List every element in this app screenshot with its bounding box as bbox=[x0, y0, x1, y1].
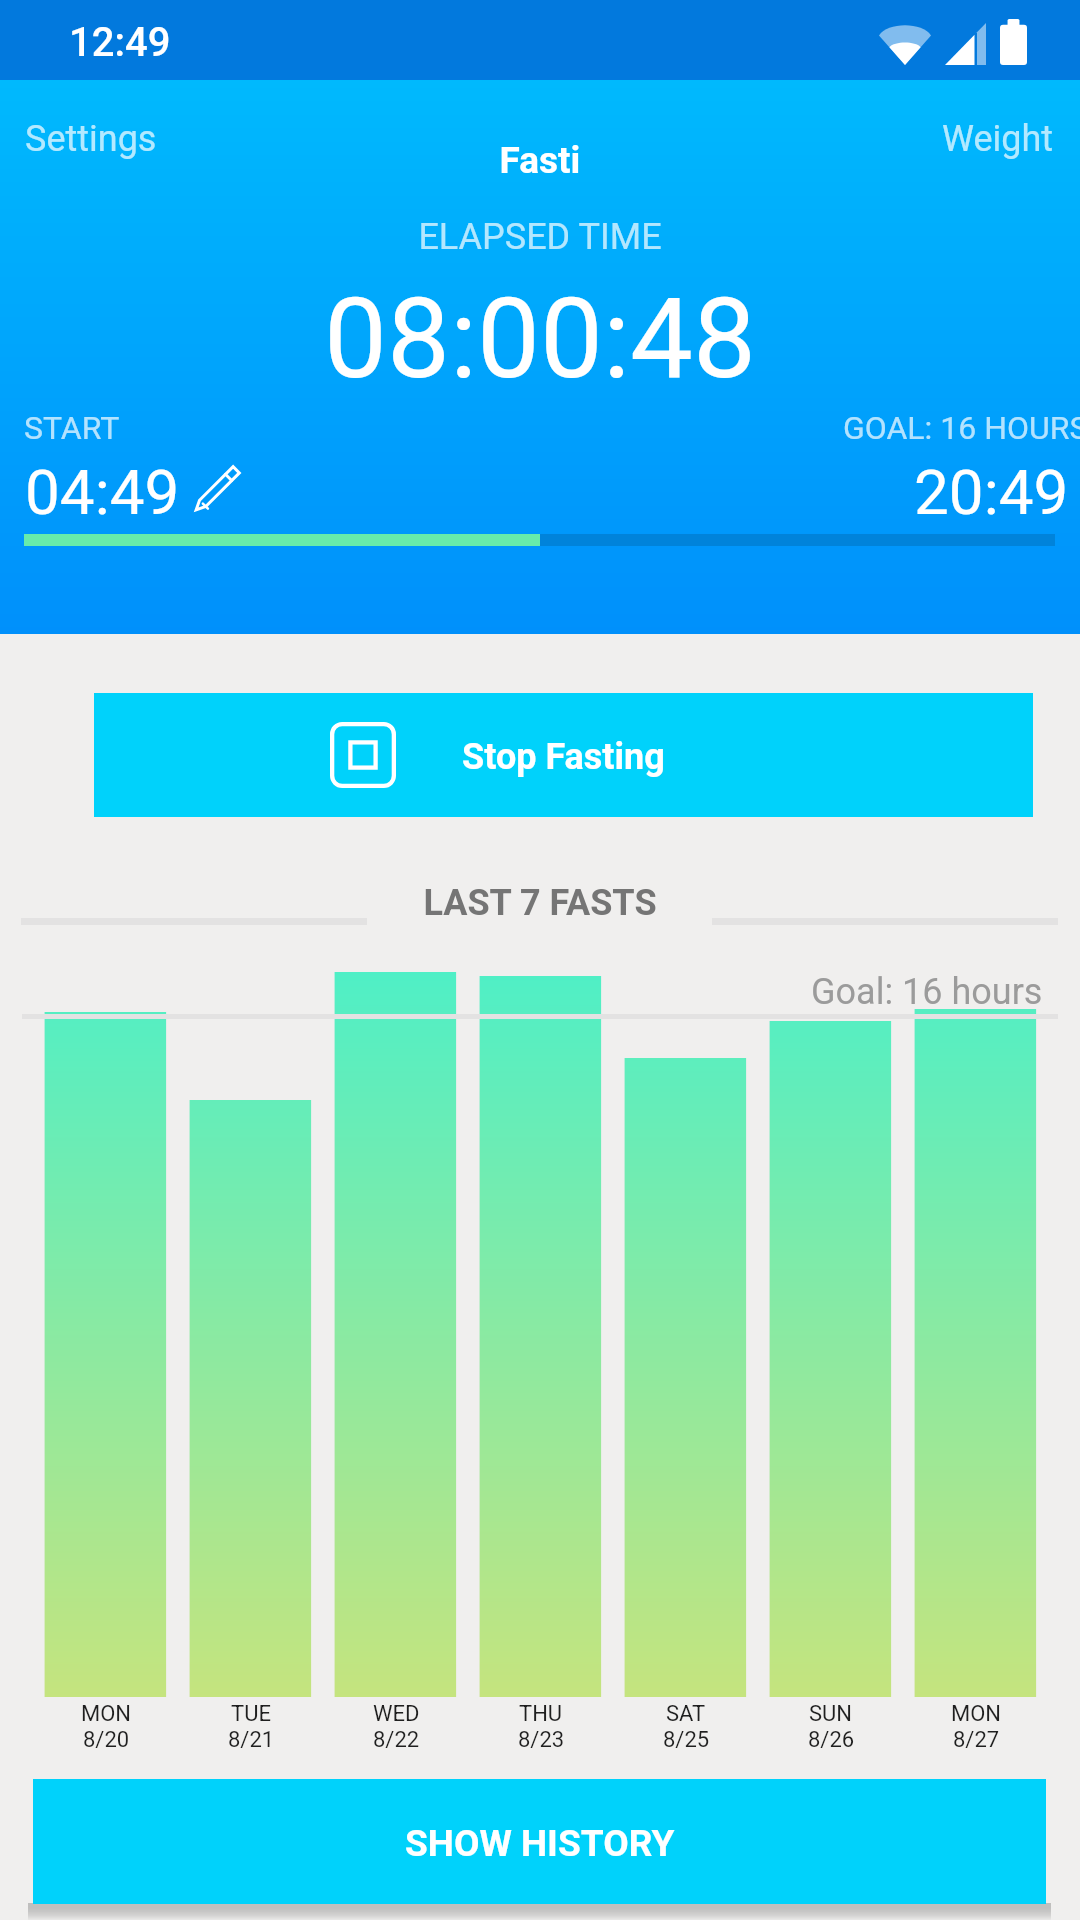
staticText: 8/25 bbox=[663, 1727, 710, 1753]
button[interactable]: Edit start time bbox=[192, 462, 244, 514]
staticText: Goal: 16 hours bbox=[811, 971, 1043, 1013]
staticText: Weight bbox=[942, 118, 1054, 160]
staticText: 8/21 bbox=[228, 1727, 275, 1753]
staticText: SAT bbox=[666, 1701, 706, 1727]
button[interactable]: Stop Fasting bbox=[94, 693, 1033, 817]
button[interactable]: Settings bbox=[0, 118, 182, 160]
staticText: 08:00:48 bbox=[0, 273, 1080, 404]
staticText: WED bbox=[373, 1701, 420, 1727]
staticText: Stop Fasting bbox=[462, 736, 665, 778]
staticText: SHOW HISTORY bbox=[405, 1822, 675, 1865]
staticText: 8/26 bbox=[808, 1727, 855, 1753]
button[interactable]: Weight bbox=[917, 118, 1080, 160]
staticText: 8/20 bbox=[83, 1727, 130, 1753]
staticText: 12:49 bbox=[69, 19, 171, 66]
staticText: LAST 7 FASTS bbox=[0, 882, 1080, 924]
staticText: TUE bbox=[231, 1701, 271, 1727]
staticText: MON bbox=[81, 1701, 132, 1727]
staticText: THU bbox=[519, 1701, 563, 1727]
staticText: SUN bbox=[809, 1701, 853, 1727]
staticText: 8/23 bbox=[518, 1727, 565, 1753]
staticText: Settings bbox=[25, 118, 157, 160]
staticText: 8/22 bbox=[373, 1727, 420, 1753]
staticText: MON bbox=[951, 1701, 1002, 1727]
staticText: 8/27 bbox=[953, 1727, 1000, 1753]
button[interactable]: SHOW HISTORY bbox=[33, 1779, 1046, 1904]
staticText: START bbox=[24, 409, 120, 447]
staticText: 20:49 bbox=[914, 456, 1069, 529]
staticText: ELAPSED TIME bbox=[0, 216, 1080, 258]
staticText: GOAL: 16 HOURS bbox=[843, 409, 1080, 447]
staticText: Fasti bbox=[0, 139, 1080, 182]
staticText: 04:49 bbox=[25, 456, 180, 529]
